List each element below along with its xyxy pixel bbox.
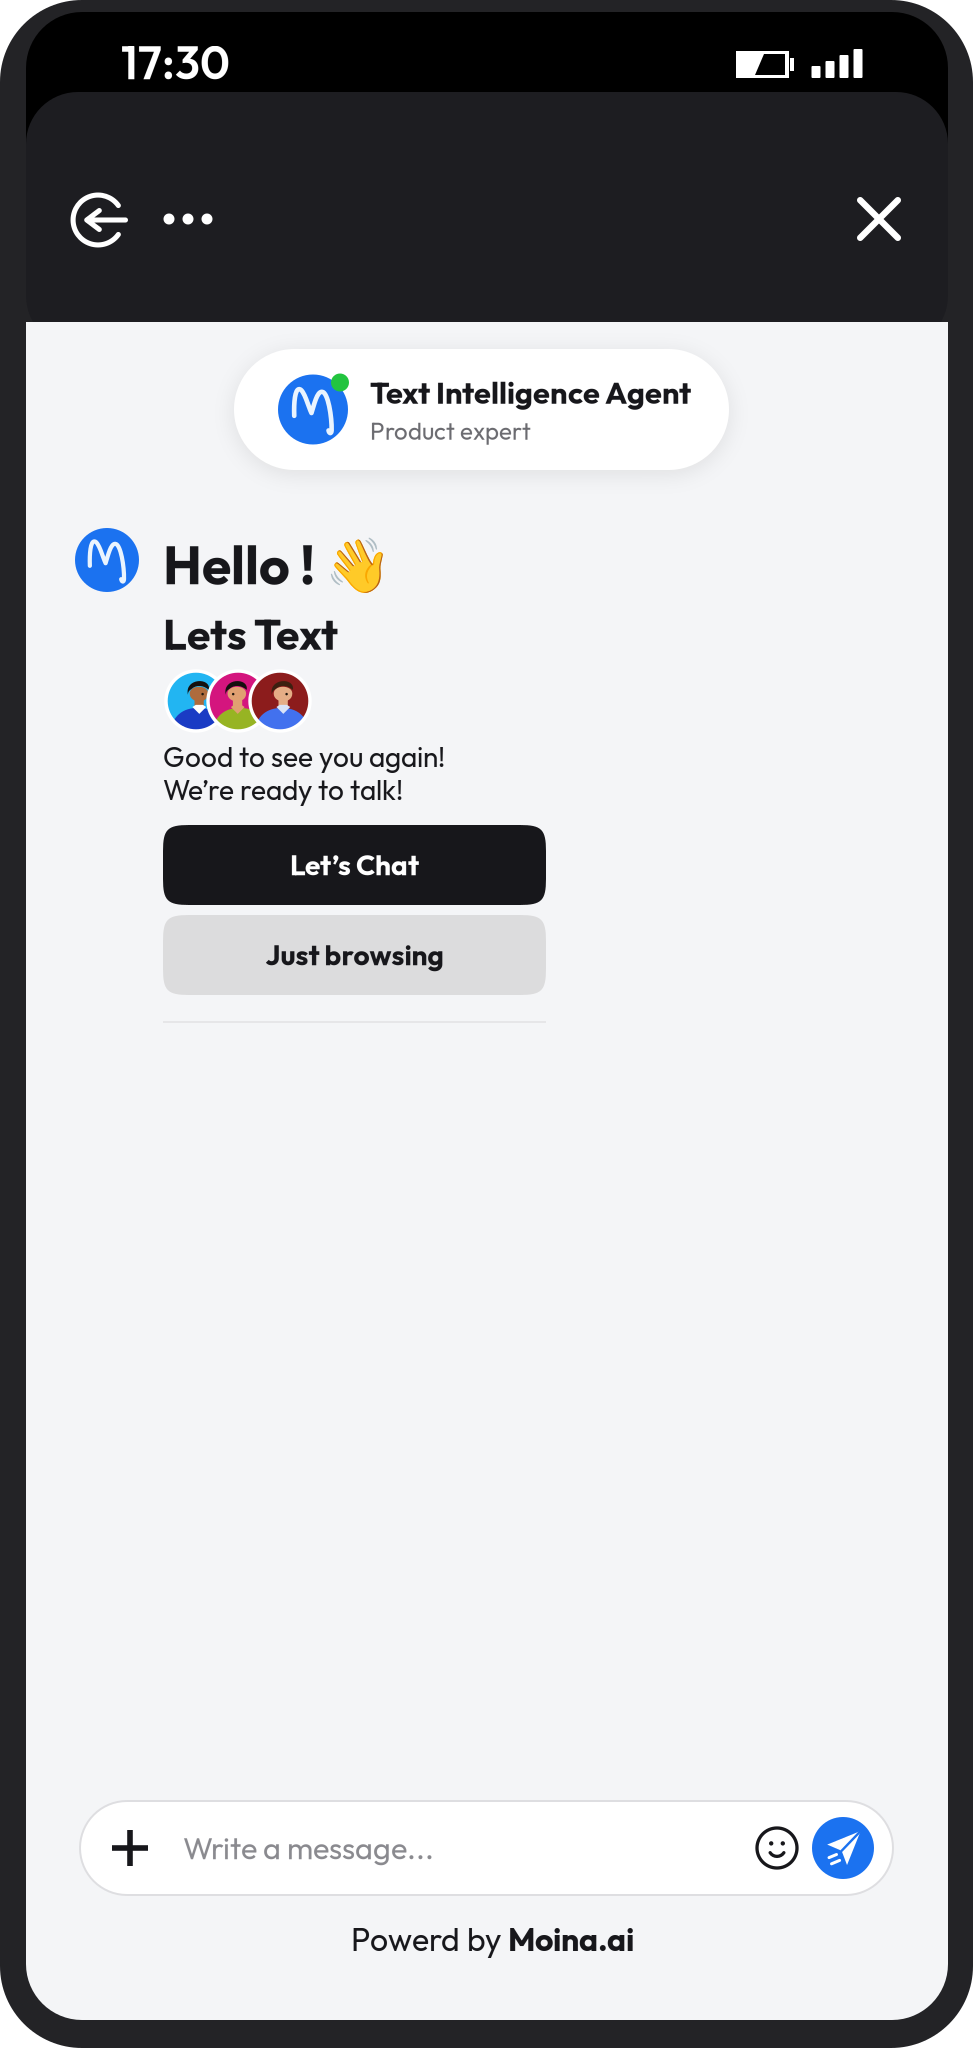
staticText: Just browsing bbox=[265, 937, 443, 973]
staticText: Moina.ai bbox=[508, 1919, 634, 1959]
staticText: 17:30 bbox=[121, 34, 230, 91]
staticText: Hello ! 👋 bbox=[163, 531, 391, 598]
button[interactable]: More options bbox=[149, 180, 227, 258]
staticText: Write a message... bbox=[183, 1829, 434, 1867]
staticText: Powerd by bbox=[351, 1919, 508, 1959]
staticText: Let’s Chat bbox=[290, 847, 419, 883]
button[interactable]: Emoji bbox=[751, 1822, 803, 1874]
button[interactable]: Let’s Chat bbox=[163, 825, 546, 905]
button[interactable]: Send bbox=[812, 1817, 874, 1879]
staticText: Good to see you again! bbox=[163, 739, 445, 774]
button[interactable]: Back bbox=[60, 181, 138, 259]
staticText: Product expert bbox=[370, 416, 531, 446]
staticText: Text Intelligence Agent bbox=[370, 373, 691, 412]
button[interactable]: Just browsing bbox=[163, 915, 546, 995]
staticText: We’re ready to talk! bbox=[163, 772, 403, 807]
button[interactable]: Add attachment bbox=[101, 1817, 159, 1879]
button[interactable]: Close bbox=[840, 180, 918, 258]
staticText: Lets Text bbox=[163, 607, 338, 661]
